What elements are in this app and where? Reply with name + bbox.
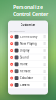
staticText: Remote (20, 69, 31, 73)
staticText: Camera (20, 83, 29, 87)
staticText: INCLUDED CONTROLS (10, 31, 25, 32)
staticText: Now Playing (20, 42, 37, 45)
button[interactable]: Home (8, 61, 48, 68)
button[interactable]: Camera (8, 82, 48, 88)
staticText: Connectivity (20, 35, 37, 38)
staticText: Display (20, 49, 29, 52)
staticText: Sound (20, 56, 29, 59)
button[interactable]: Sound (8, 54, 48, 61)
staticText: Customize (20, 23, 35, 27)
button[interactable]: Remote (8, 68, 48, 75)
staticText: Calculator (20, 76, 33, 80)
button[interactable]: Now Playing (8, 40, 48, 47)
button[interactable]: Connectivity (8, 33, 48, 40)
staticText: Control Center (13, 10, 48, 18)
staticText: Home (20, 62, 28, 66)
button[interactable]: Display (8, 47, 48, 54)
button[interactable]: Calculator (8, 75, 48, 82)
staticText: Personalize (13, 3, 43, 10)
